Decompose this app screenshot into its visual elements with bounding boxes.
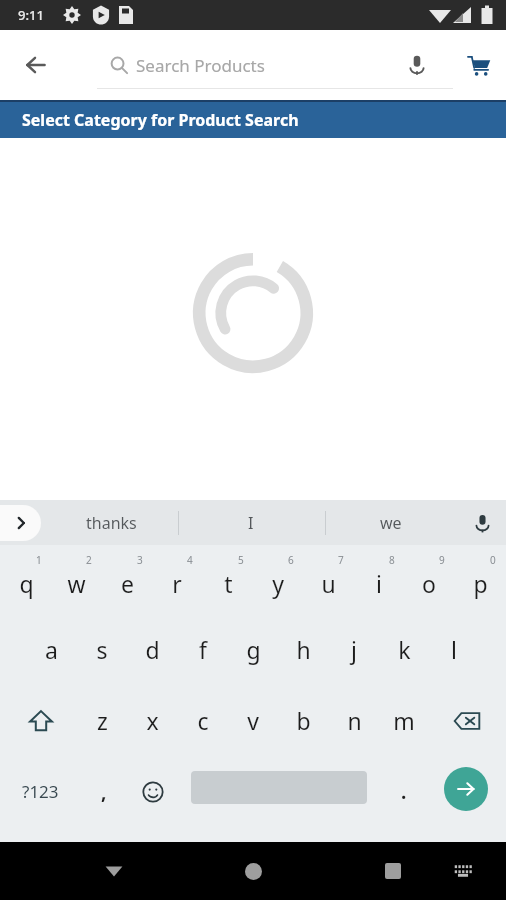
- staticText: Search Products: [136, 54, 265, 77]
- button[interactable]: k: [379, 614, 429, 685]
- staticText: d: [145, 634, 160, 665]
- staticText: 8: [389, 553, 395, 567]
- button[interactable]: Select Category for Product Search: [0, 100, 506, 138]
- staticText: u: [321, 568, 336, 599]
- staticText: 2: [86, 553, 92, 567]
- staticText: 9: [439, 553, 445, 567]
- button[interactable]: Backspace: [435, 685, 499, 756]
- button[interactable]: Search: [444, 767, 488, 811]
- staticText: Select Category for Product Search: [22, 109, 299, 131]
- button[interactable]: .: [380, 756, 428, 827]
- staticText: b: [296, 705, 311, 736]
- button[interactable]: m: [379, 685, 429, 756]
- button[interactable]: i: [354, 545, 404, 614]
- button[interactable]: p: [455, 545, 505, 614]
- button[interactable]: a: [26, 614, 76, 685]
- staticText: g: [246, 634, 261, 665]
- staticText: h: [296, 634, 311, 665]
- button[interactable]: thanks: [51, 500, 171, 545]
- button[interactable]: x: [127, 685, 177, 756]
- staticText: 5: [238, 553, 244, 567]
- button[interactable]: ?123: [4, 756, 76, 827]
- button[interactable]: j: [329, 614, 379, 685]
- button[interactable]: b: [278, 685, 328, 756]
- button[interactable]: d: [127, 614, 177, 685]
- staticText: v: [247, 705, 259, 736]
- staticText: 7: [338, 553, 344, 567]
- button[interactable]: r: [152, 545, 202, 614]
- button[interactable]: Voice input: [462, 503, 502, 543]
- staticText: y: [272, 568, 284, 599]
- button[interactable]: s: [77, 614, 127, 685]
- button[interactable]: z: [77, 685, 127, 756]
- staticText: thanks: [86, 512, 137, 534]
- staticText: a: [45, 634, 58, 665]
- staticText: m: [393, 705, 415, 736]
- staticText: ,: [101, 779, 107, 805]
- button[interactable]: g: [228, 614, 278, 685]
- button[interactable]: Home: [229, 847, 277, 895]
- button[interactable]: y: [253, 545, 303, 614]
- staticText: j: [351, 634, 357, 665]
- button[interactable]: Back: [12, 41, 60, 89]
- staticText: I: [248, 512, 254, 534]
- button[interactable]: Hide keyboard: [90, 847, 138, 895]
- button[interactable]: e: [102, 545, 152, 614]
- button[interactable]: Recent apps: [369, 847, 417, 895]
- staticText: t: [224, 568, 233, 599]
- button[interactable]: Cart: [455, 41, 503, 89]
- staticText: .: [401, 779, 407, 805]
- button[interactable]: f: [178, 614, 228, 685]
- staticText: p: [473, 568, 488, 599]
- staticText: i: [376, 568, 382, 599]
- staticText: 0: [490, 553, 496, 567]
- staticText: 9:11: [18, 6, 44, 24]
- staticText: 6: [288, 553, 294, 567]
- button[interactable]: Expand suggestions: [0, 505, 41, 541]
- button[interactable]: we: [331, 500, 451, 545]
- staticText: z: [97, 705, 108, 736]
- staticText: 3: [137, 553, 143, 567]
- staticText: q: [19, 568, 34, 599]
- staticText: o: [422, 568, 436, 599]
- button[interactable]: l: [429, 614, 479, 685]
- staticText: n: [347, 705, 362, 736]
- button[interactable]: ,: [80, 756, 128, 827]
- button[interactable]: Emoji: [129, 756, 177, 827]
- staticText: r: [172, 568, 182, 599]
- button[interactable]: c: [178, 685, 228, 756]
- staticText: w: [67, 568, 86, 599]
- button[interactable]: v: [228, 685, 278, 756]
- staticText: ?123: [22, 780, 59, 803]
- button[interactable]: t: [203, 545, 253, 614]
- button[interactable]: w: [51, 545, 101, 614]
- staticText: f: [199, 634, 207, 665]
- button[interactable]: Shift: [8, 685, 74, 756]
- staticText: k: [398, 634, 411, 665]
- button[interactable]: u: [303, 545, 353, 614]
- button[interactable]: Voice search: [395, 43, 439, 87]
- staticText: 1: [36, 553, 42, 567]
- button[interactable]: h: [278, 614, 328, 685]
- staticText: 4: [187, 553, 193, 567]
- staticText: e: [121, 568, 134, 599]
- staticText: s: [96, 634, 108, 665]
- staticText: l: [451, 634, 457, 665]
- button[interactable]: Switch keyboard: [443, 851, 483, 891]
- button[interactable]: I: [191, 500, 311, 545]
- button[interactable]: Search Products: [110, 41, 290, 89]
- staticText: x: [146, 705, 159, 736]
- staticText: c: [197, 705, 209, 736]
- staticText: we: [380, 512, 402, 534]
- button[interactable]: q: [1, 545, 51, 614]
- button[interactable]: n: [329, 685, 379, 756]
- button[interactable]: o: [404, 545, 454, 614]
